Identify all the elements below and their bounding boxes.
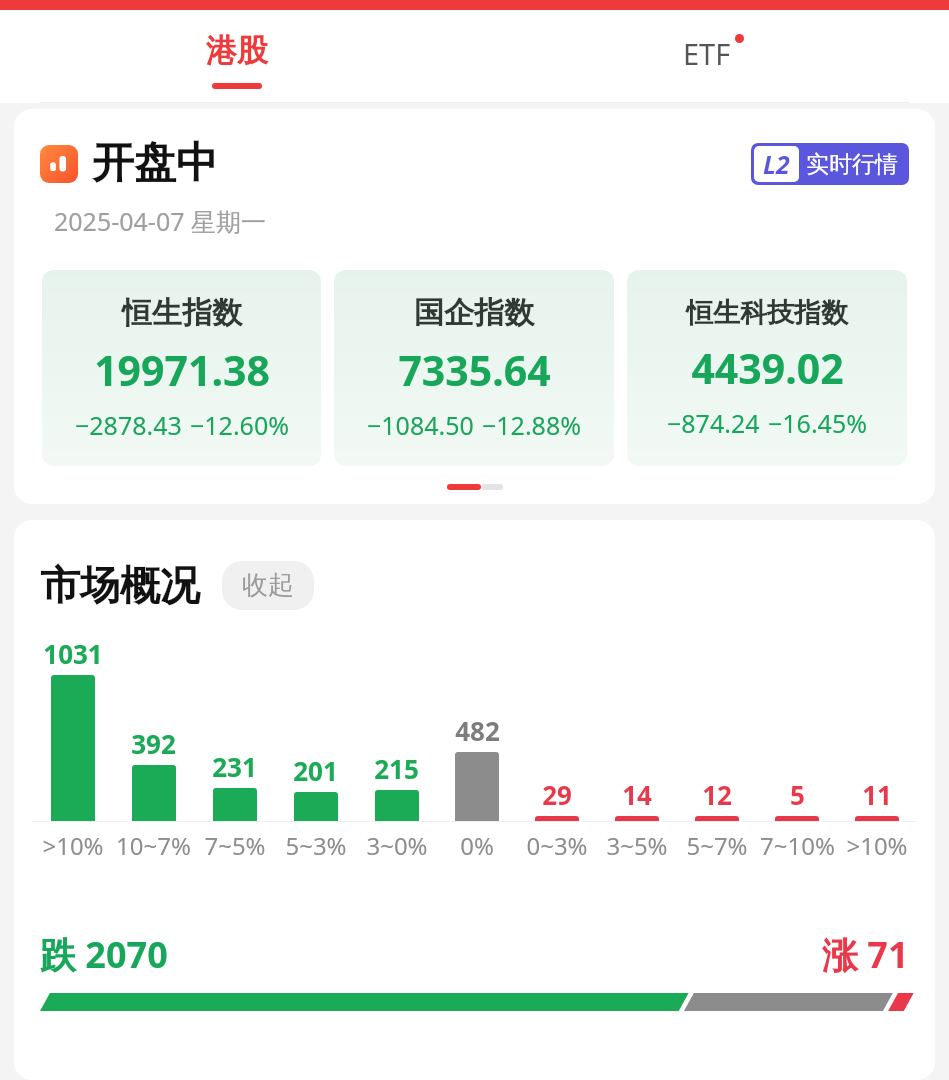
staticText: −12.60% — [190, 408, 289, 442]
staticText: 恒生科技指数 — [686, 296, 848, 330]
staticText: ETF — [683, 34, 731, 73]
staticText: 0% — [460, 829, 494, 862]
staticText: 10~7% — [116, 829, 191, 862]
staticText: −874.24 — [667, 406, 760, 440]
staticText: 国企指数 — [414, 294, 534, 332]
button[interactable]: 恒生指数 — [42, 270, 321, 466]
staticText: >10% — [846, 829, 908, 862]
staticText: 市场概况 — [40, 560, 200, 610]
staticText: −12.88% — [482, 408, 581, 442]
button[interactable]: 收起 — [222, 561, 314, 610]
button[interactable]: L2 — [751, 143, 909, 185]
staticText: 涨 71 — [822, 930, 909, 979]
button[interactable]: ETF — [474, 10, 949, 103]
staticText: 231 — [212, 749, 257, 784]
staticText: −16.45% — [768, 406, 867, 440]
staticText: 5~3% — [285, 829, 347, 862]
staticText: 482 — [455, 713, 500, 748]
button[interactable]: 国企指数 — [334, 270, 614, 466]
staticText: 5 — [790, 777, 805, 812]
staticText: −1084.50 — [367, 408, 474, 442]
staticText: 2025-04-07 星期一 — [54, 204, 267, 238]
staticText: 3~5% — [606, 829, 668, 862]
staticText: 29 — [542, 777, 572, 812]
button[interactable]: 港股 — [0, 10, 474, 103]
staticText: 0~3% — [526, 829, 588, 862]
staticText: 19971.38 — [94, 342, 270, 398]
staticText: 7335.64 — [398, 342, 551, 398]
staticText: 392 — [131, 726, 176, 761]
staticText: 5~7% — [686, 829, 748, 862]
staticText: 实时行情 — [806, 150, 898, 179]
other: Market status — [40, 145, 78, 183]
staticText: 215 — [374, 751, 419, 786]
staticText: 11 — [862, 777, 892, 812]
staticText: 7~5% — [204, 829, 266, 862]
staticText: 恒生指数 — [122, 294, 242, 332]
button[interactable]: 恒生科技指数 — [627, 270, 907, 466]
staticText: 开盘中 — [92, 137, 218, 190]
staticText: 港股 — [206, 31, 268, 70]
staticText: −2878.43 — [75, 408, 182, 442]
staticText: 12 — [702, 777, 732, 812]
staticText: 14 — [622, 777, 652, 812]
staticText: >10% — [42, 829, 104, 862]
staticText: 7~10% — [760, 829, 835, 862]
staticText: L2 — [763, 147, 790, 181]
staticText: 收起 — [242, 569, 294, 602]
staticText: 跌 2070 — [40, 930, 168, 979]
staticText: 3~0% — [366, 829, 428, 862]
staticText: 4439.02 — [691, 340, 844, 396]
staticText: 1031 — [43, 636, 103, 671]
staticText: 201 — [293, 753, 338, 788]
